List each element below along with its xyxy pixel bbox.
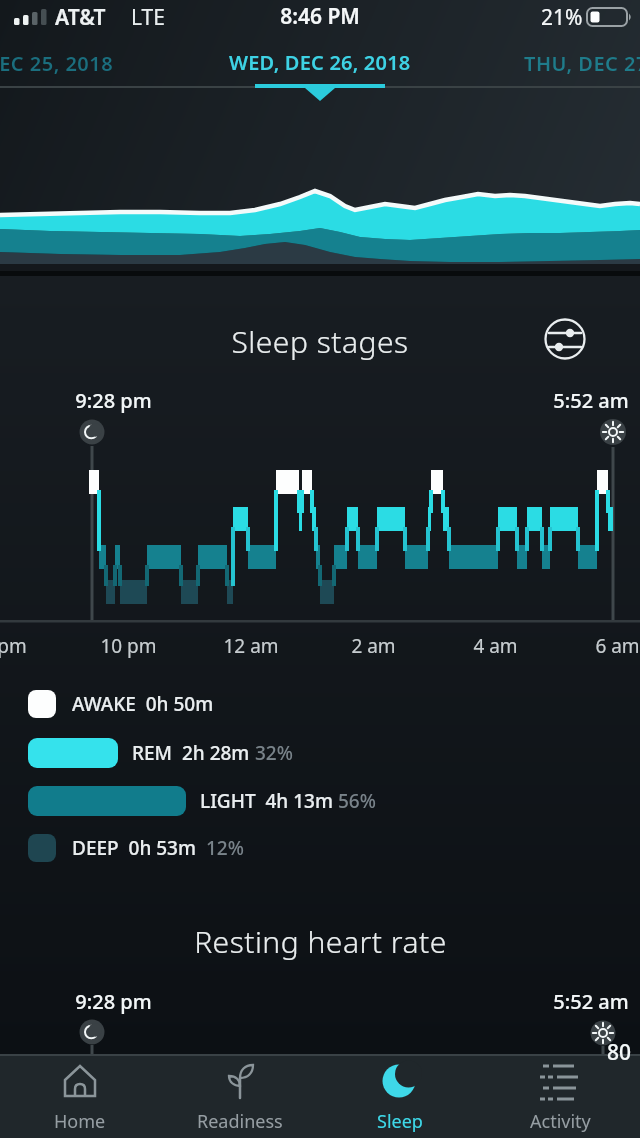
staticText: Resting heart rate [194,921,447,961]
staticText: 80 [607,1038,632,1067]
staticText: 56% [338,788,376,814]
staticText: 10 pm [100,633,157,659]
button[interactable]: Readiness [160,1054,320,1138]
staticText: Readiness [197,1109,283,1134]
staticText: Sleep [377,1109,423,1134]
staticText: DEC 25, 2018 [0,50,114,77]
staticText: DEEP 0h 53m [72,835,196,861]
staticText: THU, DEC 27, 20 [524,50,640,77]
staticText: 12 am [223,633,279,659]
staticText: 5:52 am [553,387,629,414]
staticText: 21% [541,3,583,32]
staticText: 4 am [473,633,518,659]
staticText: AWAKE 0h 50m [72,691,214,717]
staticText: REM 2h 28m [132,740,250,766]
button[interactable]: THU, DEC 27, 20 [524,46,640,80]
staticText: 32% [255,740,293,766]
button[interactable]: WED, DEC 26, 2018 [160,42,480,82]
staticText: 5:52 am [553,988,629,1015]
staticText: Activity [530,1109,591,1134]
button[interactable]: Sleep [320,1054,480,1138]
button[interactable]: Home [0,1054,160,1138]
staticText: LIGHT 4h 13m [200,788,333,814]
button[interactable]: DEC 25, 2018 [0,46,144,80]
button[interactable]: Activity [480,1054,640,1138]
staticText: 2 am [351,633,396,659]
staticText: 9:28 pm [75,988,152,1015]
staticText: 8:46 PM [280,2,360,31]
staticText: 12% [206,835,244,861]
staticText: pm [0,633,27,659]
staticText: LTE [131,3,165,32]
button[interactable] [537,311,593,367]
staticText: AT&T [55,3,106,32]
staticText: WED, DEC 26, 2018 [229,49,411,76]
staticText: 9:28 pm [75,387,152,414]
staticText: 6 am [595,633,640,659]
staticText: Home [54,1109,106,1134]
staticText: Sleep stages [231,321,409,361]
